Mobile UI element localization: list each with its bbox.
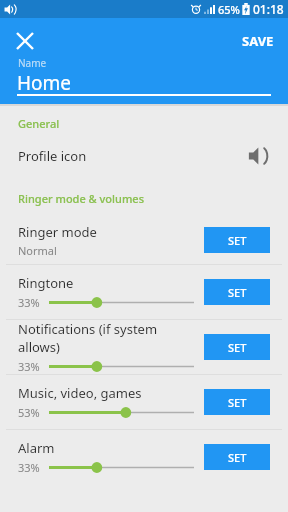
button[interactable]: Ringtone <box>0 265 288 319</box>
staticText: SAVE <box>242 32 274 50</box>
staticText: SET <box>228 233 247 248</box>
staticText: SET <box>228 340 247 355</box>
button[interactable]: SET <box>204 389 270 415</box>
staticText: Notifications (if system allows) <box>18 320 194 356</box>
button[interactable]: Notifications (if system allows) <box>0 320 288 374</box>
staticText: SET <box>228 395 247 410</box>
staticText: Music, video, games <box>18 384 142 402</box>
button[interactable]: SET <box>204 227 270 253</box>
button[interactable]: SET <box>204 334 270 360</box>
staticText: Normal <box>18 243 57 258</box>
button[interactable]: SAVE <box>228 23 288 59</box>
staticText: SET <box>228 450 247 465</box>
staticText: 53% <box>18 405 40 420</box>
button[interactable]: Alarm <box>0 430 288 484</box>
button[interactable]: Close <box>8 24 42 58</box>
button[interactable]: Ringer mode <box>0 216 288 264</box>
staticText: 33% <box>18 460 40 475</box>
staticText: Ringer mode <box>18 223 97 241</box>
button[interactable]: Home <box>17 70 72 96</box>
staticText: 01:18 <box>253 1 284 17</box>
staticText: Ringtone <box>18 274 74 292</box>
staticText: Name <box>18 56 47 70</box>
staticText: Home <box>17 70 72 96</box>
button[interactable]: Music, video, games <box>0 375 288 429</box>
staticText: Ringer mode & volumes <box>18 191 145 206</box>
button[interactable]: Profile icon <box>244 141 274 171</box>
staticText: 33% <box>18 295 40 310</box>
staticText: Alarm <box>18 439 55 457</box>
button[interactable]: SET <box>204 444 270 470</box>
button[interactable]: SET <box>204 279 270 305</box>
staticText: General <box>18 116 60 131</box>
button[interactable]: Profile icon <box>0 139 288 173</box>
staticText: 65% <box>218 2 240 17</box>
staticText: 33% <box>18 359 40 374</box>
staticText: SET <box>228 285 247 300</box>
staticText: Profile icon <box>18 147 87 165</box>
